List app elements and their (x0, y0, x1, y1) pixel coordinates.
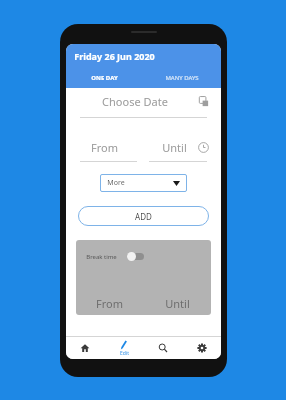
staticText: ONE DAY (91, 74, 118, 82)
staticText: Friday 26 Jun 2020 (74, 50, 155, 62)
button[interactable]: MANY DAYS (143, 67, 221, 88)
other: Pick date (198, 96, 209, 107)
staticText: Break time (86, 253, 117, 261)
button[interactable]: ONE DAY (66, 67, 143, 88)
staticText: Edit (120, 350, 129, 357)
button[interactable]: Search (143, 337, 182, 359)
button[interactable]: Settings (182, 337, 221, 359)
button[interactable]: Choose Date (66, 88, 221, 118)
button[interactable]: Break time toggle (127, 252, 144, 261)
button[interactable]: Until (143, 136, 221, 162)
staticText: Choose Date (102, 94, 168, 109)
button[interactable]: From (76, 296, 143, 311)
staticText: From (91, 140, 118, 155)
staticText: ADD (135, 211, 152, 222)
button[interactable]: Break time (76, 240, 211, 315)
button[interactable]: Until (143, 296, 211, 311)
button[interactable]: Home (66, 337, 104, 359)
staticText: Until (162, 140, 187, 155)
button[interactable]: ADD (78, 206, 209, 226)
staticText: Until (165, 296, 190, 311)
staticText: From (96, 296, 123, 311)
button[interactable]: Edit (104, 337, 143, 359)
staticText: More (107, 178, 125, 188)
button[interactable]: More (100, 174, 187, 192)
staticText: MANY DAYS (165, 74, 199, 82)
button[interactable]: From (66, 136, 143, 162)
other: Pick time (198, 142, 209, 153)
